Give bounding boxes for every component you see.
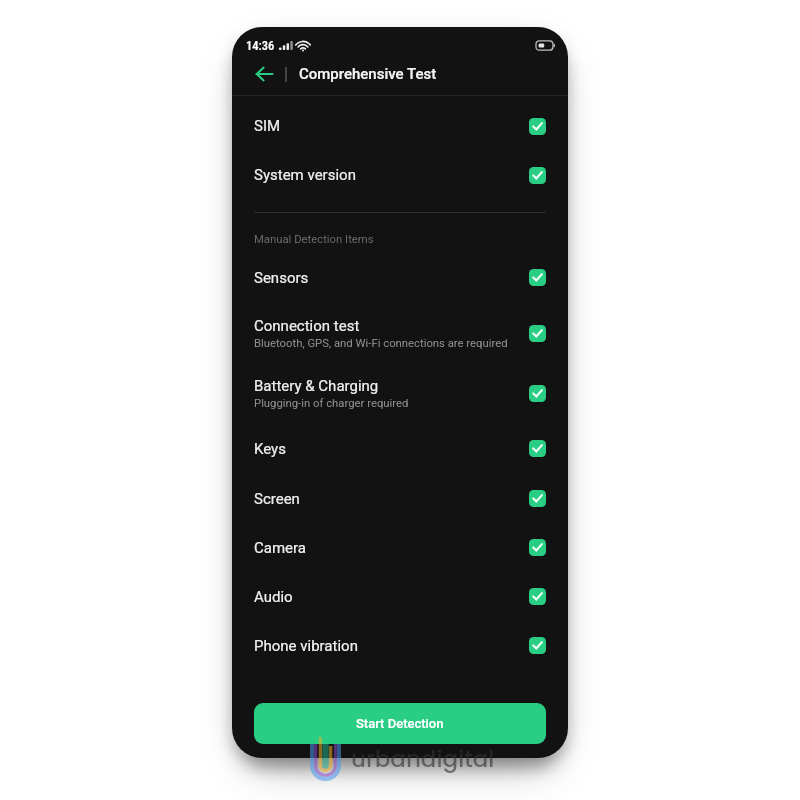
button[interactable]: Sensors [232, 251, 568, 304]
button[interactable]: Camera [232, 523, 568, 572]
button[interactable]: Back [254, 59, 273, 89]
button[interactable]: Checked [529, 118, 546, 135]
staticText: urbandigital [351, 743, 495, 775]
button[interactable]: System version [232, 150, 568, 200]
button[interactable]: Battery & Charging [232, 363, 568, 423]
staticText: Comprehensive Test [299, 65, 437, 83]
button[interactable]: Screen [232, 474, 568, 523]
staticText: Audio [254, 588, 293, 606]
button[interactable]: Checked [529, 440, 546, 457]
staticText: Screen [254, 490, 300, 508]
staticText: Manual Detection Items [254, 233, 374, 246]
button[interactable]: SIM [232, 102, 568, 150]
button[interactable]: Phone vibration [232, 621, 568, 670]
staticText: System version [254, 166, 356, 184]
staticText: Bluetooth, GPS, and Wi-Fi connections ar… [254, 337, 508, 350]
staticText: Connection test [254, 317, 360, 335]
staticText: Phone vibration [254, 637, 358, 655]
button[interactable]: Checked [529, 269, 546, 286]
staticText: Keys [254, 440, 286, 458]
button[interactable]: Checked [529, 539, 546, 556]
staticText: Camera [254, 539, 306, 557]
staticText: 14:36 [246, 38, 275, 53]
staticText: Start Detection [356, 716, 444, 731]
button[interactable]: Connection test [232, 304, 568, 363]
button[interactable]: Keys [232, 423, 568, 474]
button[interactable]: Checked [529, 167, 546, 184]
button[interactable]: Checked [529, 325, 546, 342]
button[interactable]: Checked [529, 490, 546, 507]
staticText: Plugging-in of charger required [254, 397, 409, 410]
button[interactable]: Start Detection [254, 703, 546, 744]
button[interactable]: Audio [232, 572, 568, 621]
staticText: SIM [254, 117, 281, 135]
button[interactable]: Checked [529, 385, 546, 402]
button[interactable]: Checked [529, 588, 546, 605]
button[interactable]: Checked [529, 637, 546, 654]
staticText: Sensors [254, 269, 309, 287]
staticText: Battery & Charging [254, 377, 379, 395]
